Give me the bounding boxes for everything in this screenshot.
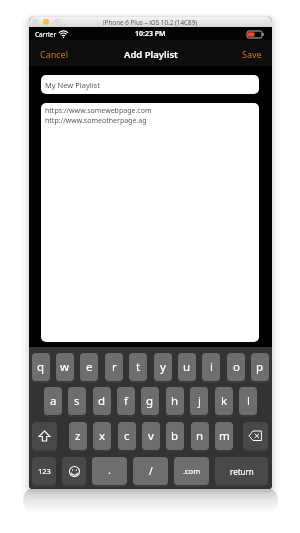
staticText: l	[247, 393, 250, 409]
staticText: Add Playlist	[124, 48, 178, 61]
button[interactable]: return	[215, 457, 268, 487]
staticText: b	[171, 428, 179, 444]
staticText: k	[221, 393, 228, 409]
staticText: .com	[183, 466, 201, 476]
staticText: m	[219, 428, 230, 444]
staticText: v	[148, 428, 154, 444]
button[interactable]: s	[68, 387, 86, 417]
staticText: h	[171, 393, 179, 409]
button[interactable]: .com	[174, 457, 209, 487]
staticText: r	[112, 359, 117, 375]
button[interactable]: p	[251, 353, 269, 383]
staticText: s	[74, 393, 80, 409]
button[interactable]: k	[215, 387, 233, 417]
staticText: 123	[38, 466, 51, 476]
staticText: d	[98, 393, 106, 409]
staticText: c	[124, 428, 130, 444]
button[interactable]: z	[69, 422, 87, 452]
button[interactable]	[62, 457, 86, 487]
staticText: u	[183, 359, 191, 375]
button[interactable]: j	[190, 387, 208, 417]
staticText: .	[108, 462, 111, 477]
staticText: My New Playlist	[45, 80, 100, 90]
button[interactable]: a	[44, 387, 62, 417]
staticText: f	[124, 393, 128, 409]
button[interactable]: w	[56, 353, 74, 383]
button[interactable]: My New Playlist	[41, 75, 259, 94]
button[interactable]: Cancel	[40, 47, 69, 59]
button[interactable]: c	[118, 422, 136, 452]
button[interactable]: g	[141, 387, 159, 417]
staticText: e	[86, 359, 93, 375]
staticText: i	[210, 359, 213, 375]
button[interactable]: y	[154, 353, 172, 383]
staticText: j	[198, 393, 201, 409]
staticText: iPhone 6 Plus – iOS 10.2 (14C89)	[103, 18, 198, 27]
button[interactable]	[243, 422, 268, 452]
button[interactable]: t	[129, 353, 147, 383]
staticText: w	[60, 359, 70, 375]
staticText: Save	[242, 48, 262, 60]
staticText: q	[37, 359, 45, 375]
staticText: a	[50, 393, 57, 409]
button[interactable]: .	[92, 457, 127, 487]
staticText: o	[233, 359, 240, 375]
staticText: p	[256, 359, 264, 375]
staticText: http://www.someotherpage.ag	[45, 116, 147, 126]
button[interactable]: Save	[242, 47, 262, 59]
button[interactable]: x	[93, 422, 111, 452]
button[interactable]: d	[93, 387, 111, 417]
staticText: return	[230, 466, 254, 477]
button[interactable]: https://www.somewebpage.com	[41, 103, 259, 342]
staticText: 10:23 PM	[135, 29, 166, 39]
staticText: y	[160, 359, 166, 375]
button[interactable]: h	[166, 387, 184, 417]
button[interactable]: i	[202, 353, 220, 383]
staticText: Cancel	[40, 48, 69, 60]
button[interactable]: u	[178, 353, 196, 383]
button[interactable]: /	[133, 457, 168, 487]
staticText: z	[75, 428, 81, 444]
button[interactable]: 123	[32, 457, 56, 487]
button[interactable]: n	[191, 422, 209, 452]
staticText: g	[146, 393, 154, 409]
staticText: n	[196, 428, 204, 444]
button[interactable]: f	[117, 387, 135, 417]
button[interactable]: b	[166, 422, 184, 452]
button[interactable]: r	[105, 353, 123, 383]
staticText: /	[149, 464, 153, 478]
staticText: x	[99, 428, 106, 444]
button[interactable]: o	[227, 353, 245, 383]
button[interactable]: q	[32, 353, 50, 383]
button[interactable]: v	[142, 422, 160, 452]
button[interactable]: m	[215, 422, 233, 452]
button[interactable]: l	[239, 387, 257, 417]
staticText: Carrier	[35, 30, 57, 39]
staticText: t	[136, 359, 141, 375]
button[interactable]	[32, 422, 57, 452]
button[interactable]: e	[80, 353, 98, 383]
staticText: https://www.somewebpage.com	[45, 106, 152, 116]
